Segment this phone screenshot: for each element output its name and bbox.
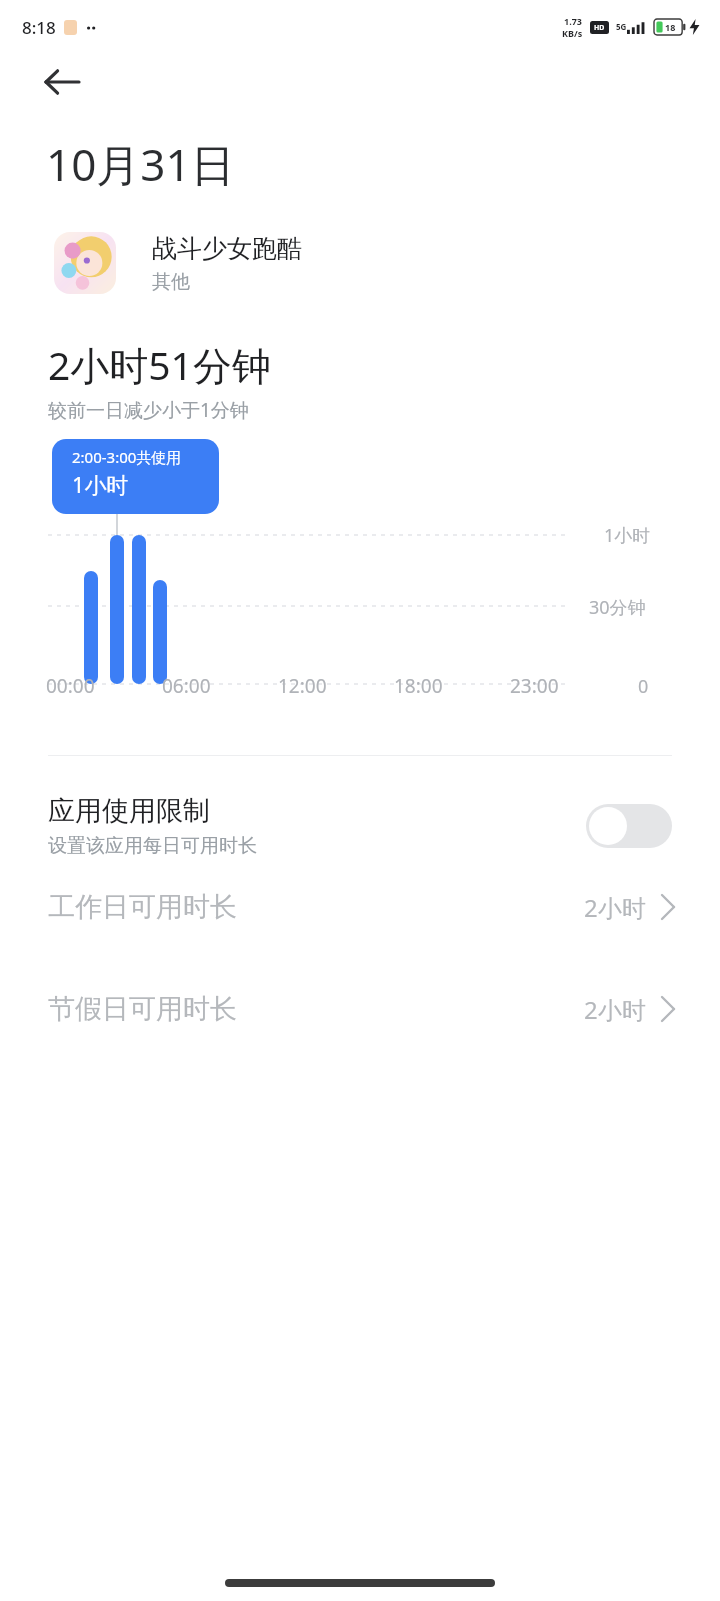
staticText: 06:00 bbox=[162, 673, 224, 699]
button[interactable]: 应用使用限制 bbox=[0, 794, 720, 858]
staticText: 18:00 bbox=[394, 673, 456, 699]
staticText: 战斗少女跑酷 bbox=[152, 233, 302, 264]
staticText: 2:00-3:00共使用 bbox=[72, 447, 182, 467]
staticText: KB/s bbox=[562, 27, 583, 39]
staticText: 其他 bbox=[152, 270, 190, 294]
button[interactable]: 工作日可用时长 bbox=[0, 890, 720, 924]
staticText: 18 bbox=[665, 21, 676, 33]
staticText: 00:00 bbox=[46, 673, 108, 699]
button[interactable]: 战斗少女跑酷 bbox=[0, 232, 720, 294]
staticText: 10月31日 bbox=[46, 134, 235, 194]
button[interactable]: App limit toggle bbox=[586, 804, 672, 848]
staticText: 30分钟 bbox=[589, 595, 646, 620]
staticText: 8:18 bbox=[22, 16, 56, 39]
staticText: 1.73 bbox=[564, 15, 582, 27]
staticText: 12:00 bbox=[278, 673, 340, 699]
staticText: 较前一日减少小于1分钟 bbox=[48, 397, 249, 423]
staticText: 应用使用限制 bbox=[48, 794, 210, 828]
staticText: 1小时 bbox=[604, 523, 651, 548]
staticText: 0 bbox=[638, 674, 649, 699]
staticText: 1小时 bbox=[72, 469, 129, 499]
staticText: 2小时51分钟 bbox=[48, 338, 271, 391]
button[interactable]: 2:00-3:00共使用 bbox=[52, 439, 219, 514]
staticText: 2小时 bbox=[584, 891, 646, 924]
staticText: 工作日可用时长 bbox=[48, 890, 584, 924]
staticText: HD bbox=[594, 23, 605, 33]
staticText: 5G bbox=[616, 21, 627, 32]
staticText: 2小时 bbox=[584, 993, 646, 1026]
staticText: 设置该应用每日可用时长 bbox=[48, 834, 257, 858]
button[interactable]: Back bbox=[34, 54, 90, 110]
staticText: 23:00 bbox=[510, 673, 572, 699]
button[interactable]: 节假日可用时长 bbox=[0, 992, 720, 1026]
staticText: 节假日可用时长 bbox=[48, 992, 584, 1026]
